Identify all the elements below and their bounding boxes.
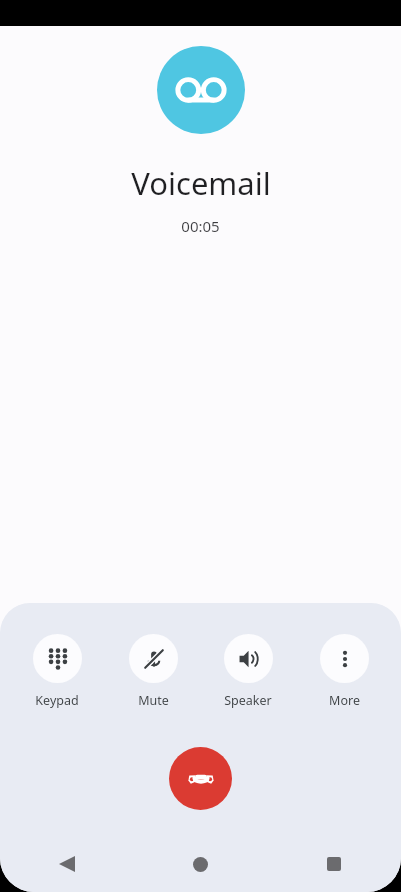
staticText: Voicemail	[131, 162, 271, 204]
staticText: Mute	[138, 692, 169, 709]
button[interactable]: More	[306, 634, 382, 709]
button[interactable]: Speaker	[210, 634, 286, 709]
staticText: More	[329, 692, 360, 709]
button[interactable]: Back	[0, 836, 133, 892]
staticText: Speaker	[224, 692, 272, 709]
button[interactable]: Home	[133, 836, 267, 892]
button[interactable]: Mute	[115, 634, 191, 709]
button[interactable]: Keypad	[19, 634, 95, 709]
staticText: Keypad	[35, 692, 79, 709]
staticText: 00:05	[181, 216, 220, 236]
button[interactable]: End call	[169, 747, 232, 810]
button[interactable]: Recent apps	[267, 836, 401, 892]
